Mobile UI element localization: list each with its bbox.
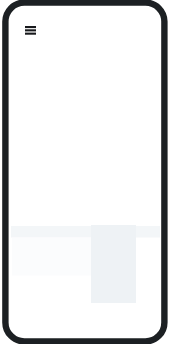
button[interactable]: Open navigation menu (18, 19, 43, 44)
